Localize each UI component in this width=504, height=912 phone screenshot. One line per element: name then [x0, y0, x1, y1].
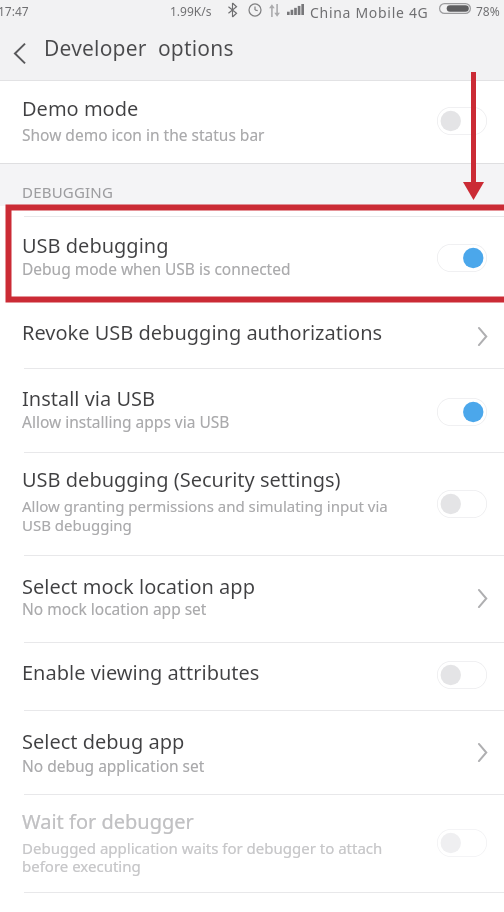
staticText: Debug mode when USB is connected — [22, 258, 291, 279]
staticText: 17:47 — [0, 3, 29, 19]
button[interactable] — [0, 794, 504, 891]
button[interactable] — [437, 661, 487, 689]
staticText: 78% — [476, 3, 500, 19]
staticText: USB debugging (Security settings) — [22, 466, 341, 493]
button[interactable] — [0, 452, 504, 555]
button[interactable] — [0, 303, 504, 368]
button[interactable] — [6, 36, 40, 68]
staticText: Select debug app — [22, 728, 185, 755]
staticText: No mock location app set — [22, 598, 207, 619]
button[interactable] — [437, 398, 487, 426]
button[interactable] — [0, 710, 504, 794]
staticText: Allow installing apps via USB — [22, 411, 230, 432]
button[interactable] — [0, 555, 504, 642]
button[interactable] — [437, 107, 487, 135]
staticText: Demo mode — [22, 95, 139, 122]
button[interactable] — [0, 211, 504, 296]
button[interactable] — [0, 81, 504, 163]
staticText: DEBUGGING — [22, 182, 114, 202]
button[interactable] — [437, 490, 487, 518]
button[interactable] — [437, 244, 487, 272]
staticText: Debugged application waits for debugger … — [22, 838, 383, 877]
staticText: USB debugging — [22, 232, 169, 259]
button[interactable] — [437, 829, 487, 857]
staticText: Revoke USB debugging authorizations — [22, 319, 383, 346]
staticText: Wait for debugger — [22, 808, 194, 835]
staticText: Developer options — [44, 34, 234, 63]
button[interactable] — [0, 642, 504, 709]
staticText: Select mock location app — [22, 573, 255, 600]
staticText: Enable viewing attributes — [22, 659, 260, 686]
staticText: Show demo icon in the status bar — [22, 124, 265, 145]
staticText: China Mobile 4G — [310, 3, 429, 22]
staticText: No debug application set — [22, 755, 205, 776]
staticText: Allow granting permissions and simulatin… — [22, 496, 388, 535]
staticText: 1.99K/s — [170, 3, 212, 19]
button[interactable] — [0, 368, 504, 452]
staticText: Install via USB — [22, 385, 156, 412]
